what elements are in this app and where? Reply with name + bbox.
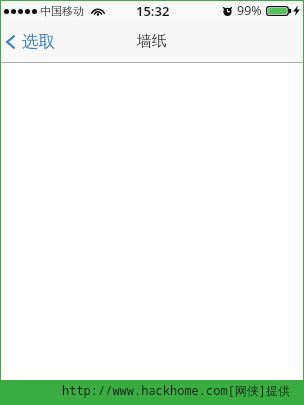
staticText: 墙纸	[137, 32, 167, 51]
other: Alarm set	[222, 5, 233, 16]
other: Charging	[293, 5, 300, 16]
other: Battery 99 percent	[266, 6, 292, 16]
other: Wi-Fi connected	[91, 7, 105, 16]
staticText: 15:32	[136, 2, 170, 20]
button[interactable]: 选取	[1, 20, 65, 63]
staticText: http://www.hackhome.com[网侠]提供	[62, 382, 291, 398]
staticText: 选取	[22, 31, 55, 52]
staticText: 99%	[237, 2, 262, 19]
staticText: 中国移动	[40, 4, 84, 18]
